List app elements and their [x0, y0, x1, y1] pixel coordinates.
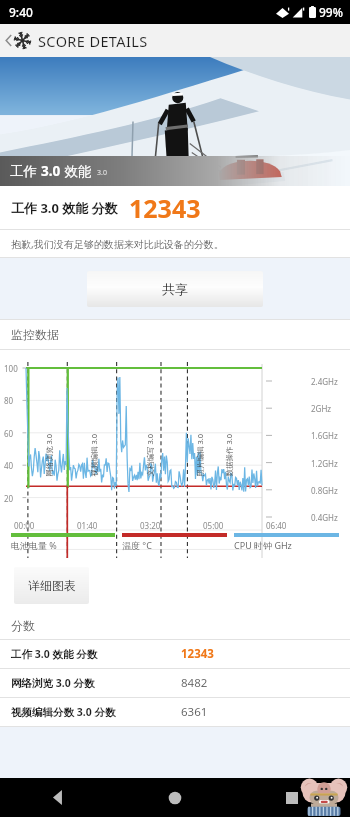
button[interactable]: 视频编辑分数 3.0 分数: [0, 698, 350, 726]
staticText: 12343: [129, 191, 201, 225]
staticText: 网络浏览 3.0 分数: [11, 676, 181, 690]
staticText: 工作: [10, 162, 41, 180]
staticText: 3.0: [41, 162, 61, 180]
staticText: 2.4GHz: [311, 376, 338, 387]
staticText: 80: [4, 395, 14, 406]
staticText: CPU 时钟 GHz: [234, 539, 292, 551]
staticText: 1.2GHz: [311, 458, 338, 469]
staticText: 99%: [319, 4, 343, 20]
staticText: 03:20: [140, 520, 161, 531]
staticText: 共享: [162, 281, 188, 297]
button[interactable]: Recent apps: [233, 778, 350, 817]
staticText: 100: [4, 363, 18, 374]
staticText: 05:00: [203, 520, 224, 531]
staticText: 工作 3.0 效能 分数: [11, 647, 181, 661]
staticText: 0.8GHz: [311, 485, 338, 496]
staticText: 照片编辑 3.0: [194, 433, 204, 476]
staticText: 网络浏览 3.0: [43, 433, 53, 476]
staticText: 抱歉,我们没有足够的数据来对比此设备的分数。: [11, 237, 224, 251]
staticText: 文档编写 3.0: [144, 433, 154, 476]
staticText: 视频编辑分数 3.0 分数: [11, 705, 181, 719]
button[interactable]: 网络浏览 3.0 分数: [0, 669, 350, 697]
staticText: 20: [4, 493, 14, 504]
staticText: 1.6GHz: [311, 430, 338, 441]
staticText: 6361: [181, 704, 208, 720]
staticText: 12343: [181, 646, 214, 662]
button[interactable]: Back to score details: [0, 24, 156, 57]
button[interactable]: 工作 3.0 效能 分数: [0, 640, 350, 668]
button[interactable]: Home: [116, 778, 233, 817]
staticText: 40: [4, 460, 14, 471]
staticText: 工作 3.0 效能 分数: [11, 199, 118, 217]
button[interactable]: Back: [0, 778, 116, 817]
staticText: 00:00: [14, 520, 35, 531]
staticText: 60: [4, 428, 14, 439]
staticText: 06:40: [266, 520, 287, 531]
staticText: 监控数据: [11, 327, 59, 342]
staticText: 效能: [61, 162, 92, 180]
button[interactable]: 详细图表: [14, 567, 89, 604]
staticText: 分数: [11, 618, 35, 633]
staticText: 3.0: [97, 168, 107, 178]
staticText: SCORE DETAILS: [38, 31, 148, 51]
staticText: 视频编辑 3.0: [88, 433, 98, 476]
staticText: 温度 °C: [122, 539, 152, 551]
staticText: 详细图表: [28, 578, 76, 593]
staticText: 01:40: [77, 520, 98, 531]
staticText: 8482: [181, 675, 208, 691]
staticText: 电池电量 %: [11, 539, 57, 551]
staticText: 数据操作 3.0: [223, 433, 233, 476]
staticText: 9:40: [9, 4, 33, 20]
staticText: 2GHz: [311, 403, 332, 414]
button[interactable]: 共享: [87, 271, 263, 307]
staticText: 0.4GHz: [311, 512, 338, 523]
